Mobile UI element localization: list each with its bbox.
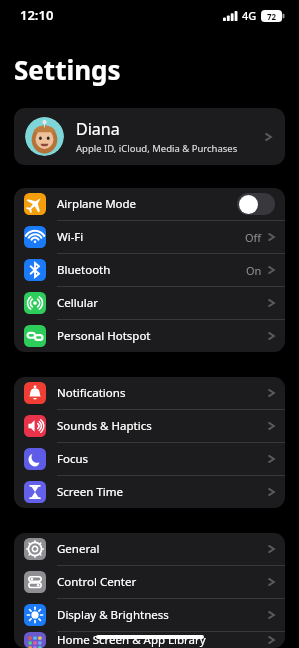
staticText: Bluetooth xyxy=(57,262,246,278)
staticText: Wi-Fi xyxy=(57,229,245,245)
staticText: Apple ID, iCloud, Media & Purchases xyxy=(76,142,238,155)
staticText: General xyxy=(57,541,268,557)
button[interactable]: Sounds & Haptics xyxy=(14,410,285,442)
button[interactable]: Focus xyxy=(14,443,285,475)
button[interactable]: Notifications xyxy=(14,377,285,409)
staticText: Airplane Mode xyxy=(57,196,237,212)
staticText: On xyxy=(246,263,262,278)
button[interactable]: Screen Time xyxy=(14,476,285,508)
button[interactable]: Control Center xyxy=(14,566,285,598)
button[interactable]: General xyxy=(14,533,285,565)
staticText: Home Screen & App Library xyxy=(57,632,268,648)
staticText: Control Center xyxy=(57,574,268,590)
button[interactable]: Wi-Fi xyxy=(14,221,285,253)
staticText: Cellular xyxy=(57,295,268,311)
staticText: Off xyxy=(245,230,262,245)
staticText: Personal Hotspot xyxy=(57,328,268,344)
staticText: Notifications xyxy=(57,385,268,401)
button[interactable]: Airplane Mode xyxy=(14,188,285,220)
staticText: Focus xyxy=(57,451,268,467)
button[interactable]: Display & Brightness xyxy=(14,599,285,631)
staticText: 72 xyxy=(267,11,277,22)
button[interactable]: Home Screen & App Library xyxy=(14,632,285,648)
button[interactable]: Cellular xyxy=(14,287,285,319)
staticText: Display & Brightness xyxy=(57,607,268,623)
staticText: 4G xyxy=(242,8,257,23)
button[interactable]: Diana xyxy=(14,108,285,165)
staticText: 12:10 xyxy=(20,6,54,24)
button[interactable]: Bluetooth xyxy=(14,254,285,286)
staticText: Sounds & Haptics xyxy=(57,418,268,434)
button[interactable]: Personal Hotspot xyxy=(14,320,285,352)
staticText: Screen Time xyxy=(57,484,268,500)
staticText: Diana xyxy=(76,118,120,140)
staticText: Settings xyxy=(14,52,121,87)
button[interactable]: Airplane Mode toggle xyxy=(237,193,275,215)
